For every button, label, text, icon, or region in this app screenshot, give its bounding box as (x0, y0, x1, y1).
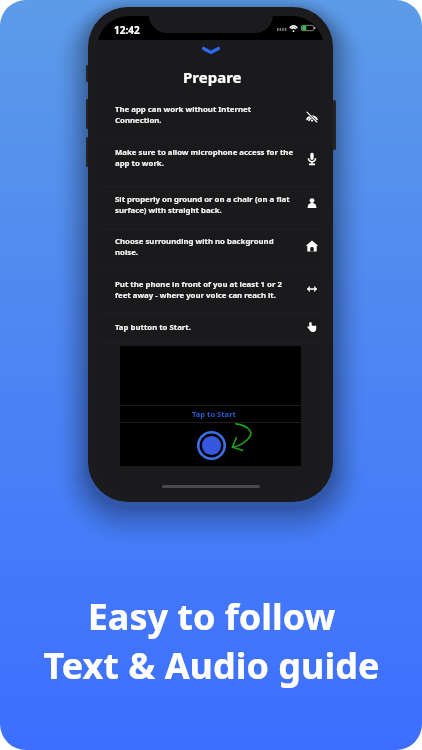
staticText: Put the phone in front of you at least 1… (115, 279, 297, 301)
staticText: Tap to Start (192, 409, 236, 419)
button[interactable]: Tap to Start (123, 406, 304, 422)
staticText: Tap button to Start. (115, 322, 297, 333)
staticText: 12:42 (114, 23, 140, 37)
button[interactable]: Put the phone in front of you at least 1… (97, 271, 324, 312)
button[interactable]: Sit properly on ground or on a chair (on… (97, 187, 324, 229)
button[interactable]: The app can work without Internet Connec… (97, 96, 324, 140)
staticText: Make sure to allow microphone access for… (115, 147, 297, 169)
staticText: The app can work without Internet Connec… (115, 104, 297, 126)
staticText: Easy to follow Text & Audio guide (43, 592, 380, 689)
button[interactable]: Start recording (196, 430, 227, 461)
button[interactable]: Tap button to Start. (97, 313, 324, 343)
button[interactable]: Make sure to allow microphone access for… (97, 141, 324, 186)
button[interactable]: Choose surrounding with no background no… (97, 230, 324, 270)
staticText: Prepare (183, 67, 242, 87)
staticText: Choose surrounding with no background no… (115, 236, 297, 258)
staticText: Sit properly on ground or on a chair (on… (115, 194, 297, 216)
